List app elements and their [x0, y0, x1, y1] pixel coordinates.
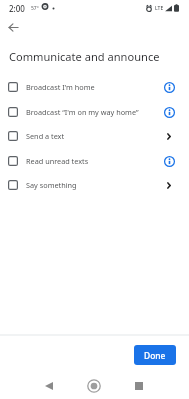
staticText: Done	[144, 350, 166, 361]
button[interactable]: Send a text	[0, 123, 189, 148]
other: Open Say something	[161, 177, 177, 193]
button[interactable]: More information	[161, 79, 177, 95]
staticText: LTE	[155, 5, 164, 12]
staticText: Say something	[26, 180, 77, 190]
button[interactable]: Broadcast I'm home	[0, 74, 189, 99]
staticText: 2:00	[9, 3, 25, 14]
staticText: Read unread texts	[26, 156, 89, 166]
button[interactable]: Say something	[0, 172, 189, 197]
button[interactable]: Home	[82, 374, 106, 398]
other: Open Send a text	[161, 128, 177, 144]
staticText: Broadcast “I'm on my way home”	[26, 107, 139, 117]
button[interactable]: More information	[161, 104, 177, 120]
button[interactable]: Read unread texts	[0, 148, 189, 173]
button[interactable]: Back	[2, 16, 24, 38]
staticText: Broadcast I'm home	[26, 82, 95, 92]
button[interactable]: More information	[161, 153, 177, 169]
button[interactable]: Recent apps	[127, 374, 151, 398]
staticText: Communicate and announce	[9, 49, 160, 64]
button[interactable]: Broadcast “I'm on my way home”	[0, 99, 189, 124]
staticText: 57°	[31, 5, 39, 12]
staticText: Send a text	[26, 131, 65, 141]
button[interactable]: Back	[37, 374, 61, 398]
button[interactable]: Done	[134, 345, 176, 365]
